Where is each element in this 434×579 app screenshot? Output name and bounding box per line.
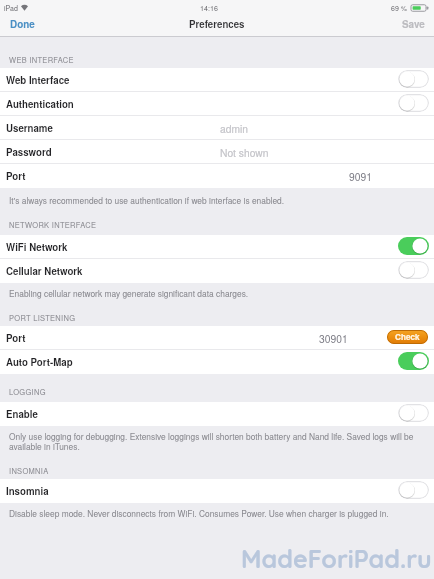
staticText: LOGGING bbox=[9, 386, 46, 397]
staticText: WEB INTERFACE bbox=[9, 54, 74, 65]
button[interactable]: Insomnia toggle bbox=[398, 481, 429, 499]
staticText: Disable sleep mode. Never disconnects fr… bbox=[9, 507, 421, 519]
staticText: Port bbox=[6, 331, 26, 345]
staticText: 9091 bbox=[349, 169, 372, 184]
button[interactable]: Web Interface bbox=[0, 68, 434, 92]
button[interactable]: Cellular Network toggle bbox=[398, 261, 429, 279]
staticText: It's always recommended to use authentic… bbox=[9, 194, 421, 206]
staticText: Enable bbox=[6, 407, 38, 421]
button[interactable]: Cellular Network bbox=[0, 259, 434, 283]
button[interactable]: Check bbox=[387, 330, 428, 344]
button[interactable]: Username bbox=[0, 116, 434, 140]
staticText: iPad bbox=[4, 3, 18, 13]
staticText: Password bbox=[6, 145, 52, 159]
button[interactable]: WiFi Network toggle bbox=[398, 237, 429, 255]
staticText: Not shown bbox=[220, 145, 269, 160]
staticText: Enabling cellular network may generate s… bbox=[9, 287, 421, 299]
button[interactable]: Authentication bbox=[0, 92, 434, 116]
button[interactable]: Authentication toggle bbox=[398, 94, 429, 112]
button[interactable]: Enable bbox=[0, 402, 434, 426]
staticText: Port bbox=[6, 169, 26, 183]
button[interactable]: Port bbox=[0, 164, 434, 188]
staticText: PORT LISTENING bbox=[9, 312, 76, 323]
staticText: 14:16 bbox=[200, 3, 218, 13]
staticText: Done bbox=[10, 17, 35, 31]
button[interactable]: Password bbox=[0, 140, 434, 164]
staticText: Auto Port-Map bbox=[6, 355, 73, 369]
staticText: Preferences bbox=[189, 17, 245, 31]
button[interactable]: Save bbox=[402, 17, 425, 31]
button[interactable]: Port bbox=[0, 326, 434, 350]
staticText: Cellular Network bbox=[6, 264, 83, 278]
staticText: 30901 bbox=[319, 331, 348, 346]
staticText: INSOMNIA bbox=[9, 465, 49, 476]
staticText: Check bbox=[395, 331, 420, 343]
staticText: MadeForiPad.ru bbox=[241, 543, 432, 574]
button[interactable]: WiFi Network bbox=[0, 235, 434, 259]
staticText: admin bbox=[220, 121, 249, 136]
button[interactable]: Insomnia bbox=[0, 479, 434, 503]
staticText: NETWORK INTERFACE bbox=[9, 219, 97, 230]
staticText: Web Interface bbox=[6, 73, 70, 87]
button[interactable]: Auto Port-Map toggle bbox=[398, 352, 429, 370]
button[interactable]: Enable toggle bbox=[398, 404, 429, 422]
staticText: 69 % bbox=[391, 3, 407, 13]
staticText: Insomnia bbox=[6, 484, 49, 498]
button[interactable]: Auto Port-Map bbox=[0, 350, 434, 374]
button[interactable]: Web Interface toggle bbox=[398, 70, 429, 88]
staticText: Only use logging for debugging. Extensiv… bbox=[9, 430, 421, 453]
staticText: WiFi Network bbox=[6, 240, 68, 254]
staticText: Authentication bbox=[6, 97, 74, 111]
staticText: Username bbox=[6, 121, 53, 135]
staticText: Save bbox=[402, 17, 425, 31]
button[interactable]: Done bbox=[10, 13, 54, 35]
